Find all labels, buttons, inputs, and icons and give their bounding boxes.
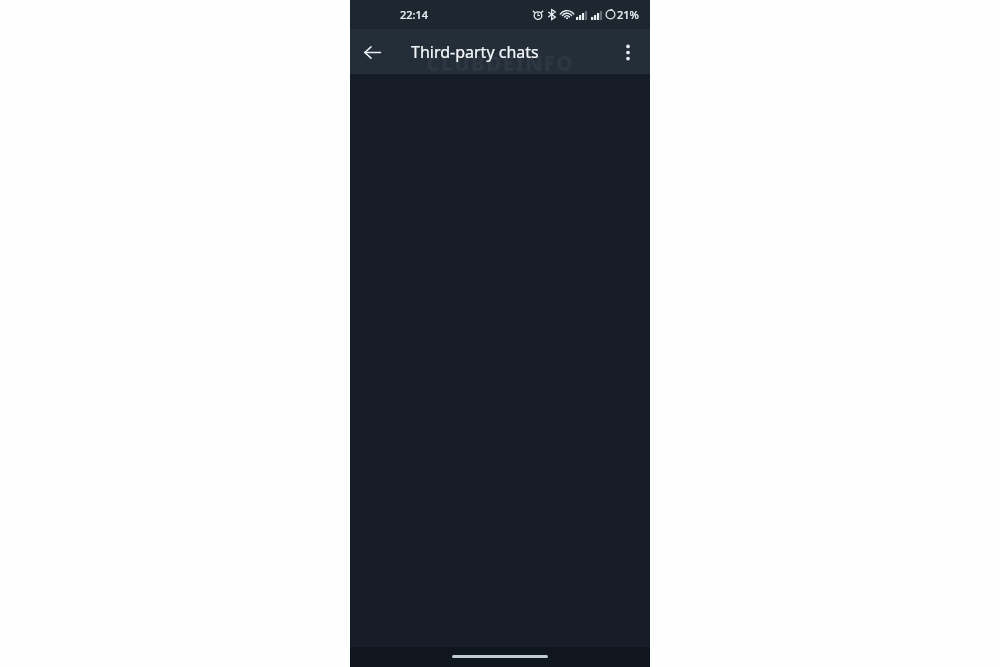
- staticText: 21%: [617, 7, 639, 22]
- staticText: CLUBDEINFO: [426, 49, 574, 78]
- button[interactable]: More options: [606, 30, 650, 74]
- staticText: Third-party chats: [411, 41, 539, 63]
- button[interactable]: Back: [350, 30, 394, 74]
- staticText: 22:14: [400, 7, 429, 22]
